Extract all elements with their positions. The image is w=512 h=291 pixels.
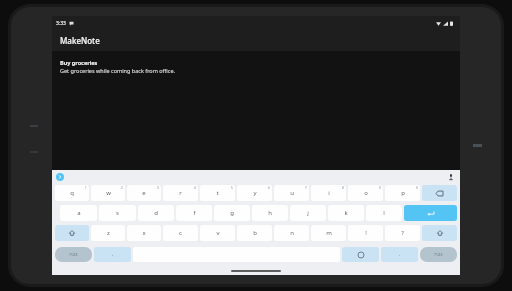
button[interactable]: k	[328, 205, 364, 221]
staticText: Buy groceries	[60, 59, 98, 66]
button[interactable]: j	[290, 205, 326, 221]
staticText: i	[328, 189, 330, 197]
staticText: 8	[342, 186, 344, 190]
staticText: k	[344, 209, 348, 217]
staticText: 7	[305, 186, 307, 190]
staticText: ?123	[434, 252, 443, 257]
staticText: Get groceries while coming back from off…	[60, 67, 176, 74]
staticText: n	[290, 229, 294, 237]
staticText: b	[253, 229, 257, 237]
staticText: f	[193, 209, 196, 217]
button[interactable]: ?123	[420, 247, 457, 262]
button[interactable]: e	[127, 185, 161, 201]
staticText: z	[107, 229, 110, 237]
staticText: r	[179, 189, 182, 197]
staticText: j	[307, 209, 309, 217]
button[interactable]: h	[252, 205, 288, 221]
staticText: x	[142, 229, 146, 237]
button[interactable]: r	[163, 185, 198, 201]
button[interactable]: w	[91, 185, 125, 201]
button[interactable]: c	[163, 225, 198, 241]
button[interactable]: a	[60, 205, 97, 221]
button[interactable]: Voice input	[446, 172, 456, 182]
button[interactable]: Backspace	[422, 185, 457, 201]
staticText: s	[116, 209, 119, 217]
staticText: MakeNote	[60, 35, 100, 46]
staticText: 2	[121, 186, 123, 190]
button[interactable]: i	[311, 185, 346, 201]
staticText: 4	[194, 186, 196, 190]
button[interactable]: f	[176, 205, 212, 221]
button[interactable]: ?	[385, 225, 420, 241]
staticText: o	[364, 189, 368, 197]
button[interactable]: o	[348, 185, 383, 201]
button[interactable]: ?123	[55, 247, 92, 262]
button[interactable]: v	[200, 225, 235, 241]
staticText: ?	[401, 229, 404, 237]
staticText: ,	[112, 251, 114, 258]
staticText: 6	[268, 186, 270, 190]
button[interactable]: q	[55, 185, 89, 201]
button[interactable]: b	[237, 225, 272, 241]
staticText: 9	[379, 186, 381, 190]
staticText: p	[401, 189, 405, 197]
staticText: g	[230, 209, 234, 217]
button[interactable]: t	[200, 185, 235, 201]
staticText: e	[142, 189, 146, 197]
button[interactable]: Comma	[94, 247, 131, 262]
staticText: u	[290, 189, 294, 197]
staticText: t	[216, 189, 219, 197]
button[interactable]: Enter	[404, 205, 457, 221]
button[interactable]: m	[311, 225, 346, 241]
staticText: c	[179, 229, 182, 237]
staticText: v	[216, 229, 220, 237]
staticText: !	[365, 229, 367, 237]
staticText: d	[154, 209, 158, 217]
button[interactable]: Expand toolbar	[56, 173, 64, 181]
staticText: l	[383, 209, 385, 217]
button[interactable]: s	[99, 205, 136, 221]
button[interactable]: n	[274, 225, 309, 241]
staticText: 5	[231, 186, 233, 190]
button[interactable]: Emoji	[342, 247, 379, 262]
button[interactable]: y	[237, 185, 272, 201]
button[interactable]: !	[348, 225, 383, 241]
staticText: y	[253, 189, 257, 197]
staticText: w	[106, 189, 111, 197]
staticText: .	[399, 251, 401, 258]
button[interactable]: z	[91, 225, 125, 241]
button[interactable]: d	[138, 205, 174, 221]
staticText: a	[77, 209, 81, 217]
button[interactable]: u	[274, 185, 309, 201]
button[interactable]: x	[127, 225, 161, 241]
staticText: m	[326, 229, 332, 237]
button[interactable]: Shift	[55, 225, 89, 241]
staticText: q	[70, 189, 74, 197]
staticText: 0	[416, 186, 418, 190]
button[interactable]: p	[385, 185, 420, 201]
staticText: h	[268, 209, 272, 217]
staticText: ?123	[69, 252, 78, 257]
staticText: 3	[157, 186, 159, 190]
button[interactable]: g	[214, 205, 250, 221]
button[interactable]: l	[366, 205, 402, 221]
button[interactable]: Shift	[422, 225, 457, 241]
staticText: 3:33	[56, 20, 66, 27]
staticText: 1	[85, 186, 87, 190]
